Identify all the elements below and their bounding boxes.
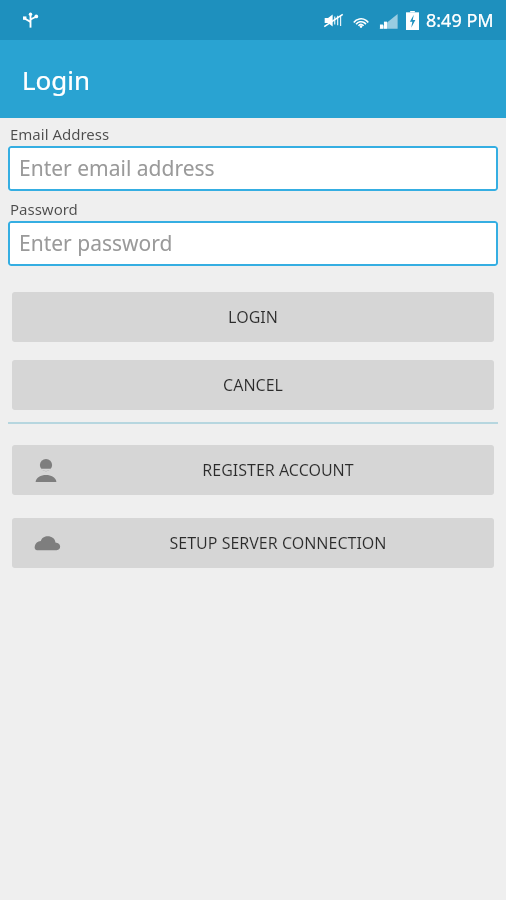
staticText: CANCEL	[223, 374, 283, 396]
staticText: Password	[10, 199, 78, 219]
button[interactable]: Enter email address	[8, 146, 498, 191]
button[interactable]: Register account	[12, 445, 494, 495]
staticText: Enter password	[19, 229, 173, 258]
staticText: REGISTER ACCOUNT	[72, 459, 484, 481]
button[interactable]: Setup server connection	[12, 518, 494, 568]
button[interactable]: Enter password	[8, 221, 498, 266]
staticText: 8:49 PM	[426, 8, 494, 33]
staticText: Email Address	[10, 124, 110, 144]
button[interactable]: CANCEL	[12, 360, 494, 410]
staticText: Enter email address	[19, 154, 215, 183]
staticText: LOGIN	[228, 306, 278, 328]
staticText: SETUP SERVER CONNECTION	[72, 532, 484, 554]
button[interactable]: LOGIN	[12, 292, 494, 342]
staticText: Login	[22, 62, 91, 97]
